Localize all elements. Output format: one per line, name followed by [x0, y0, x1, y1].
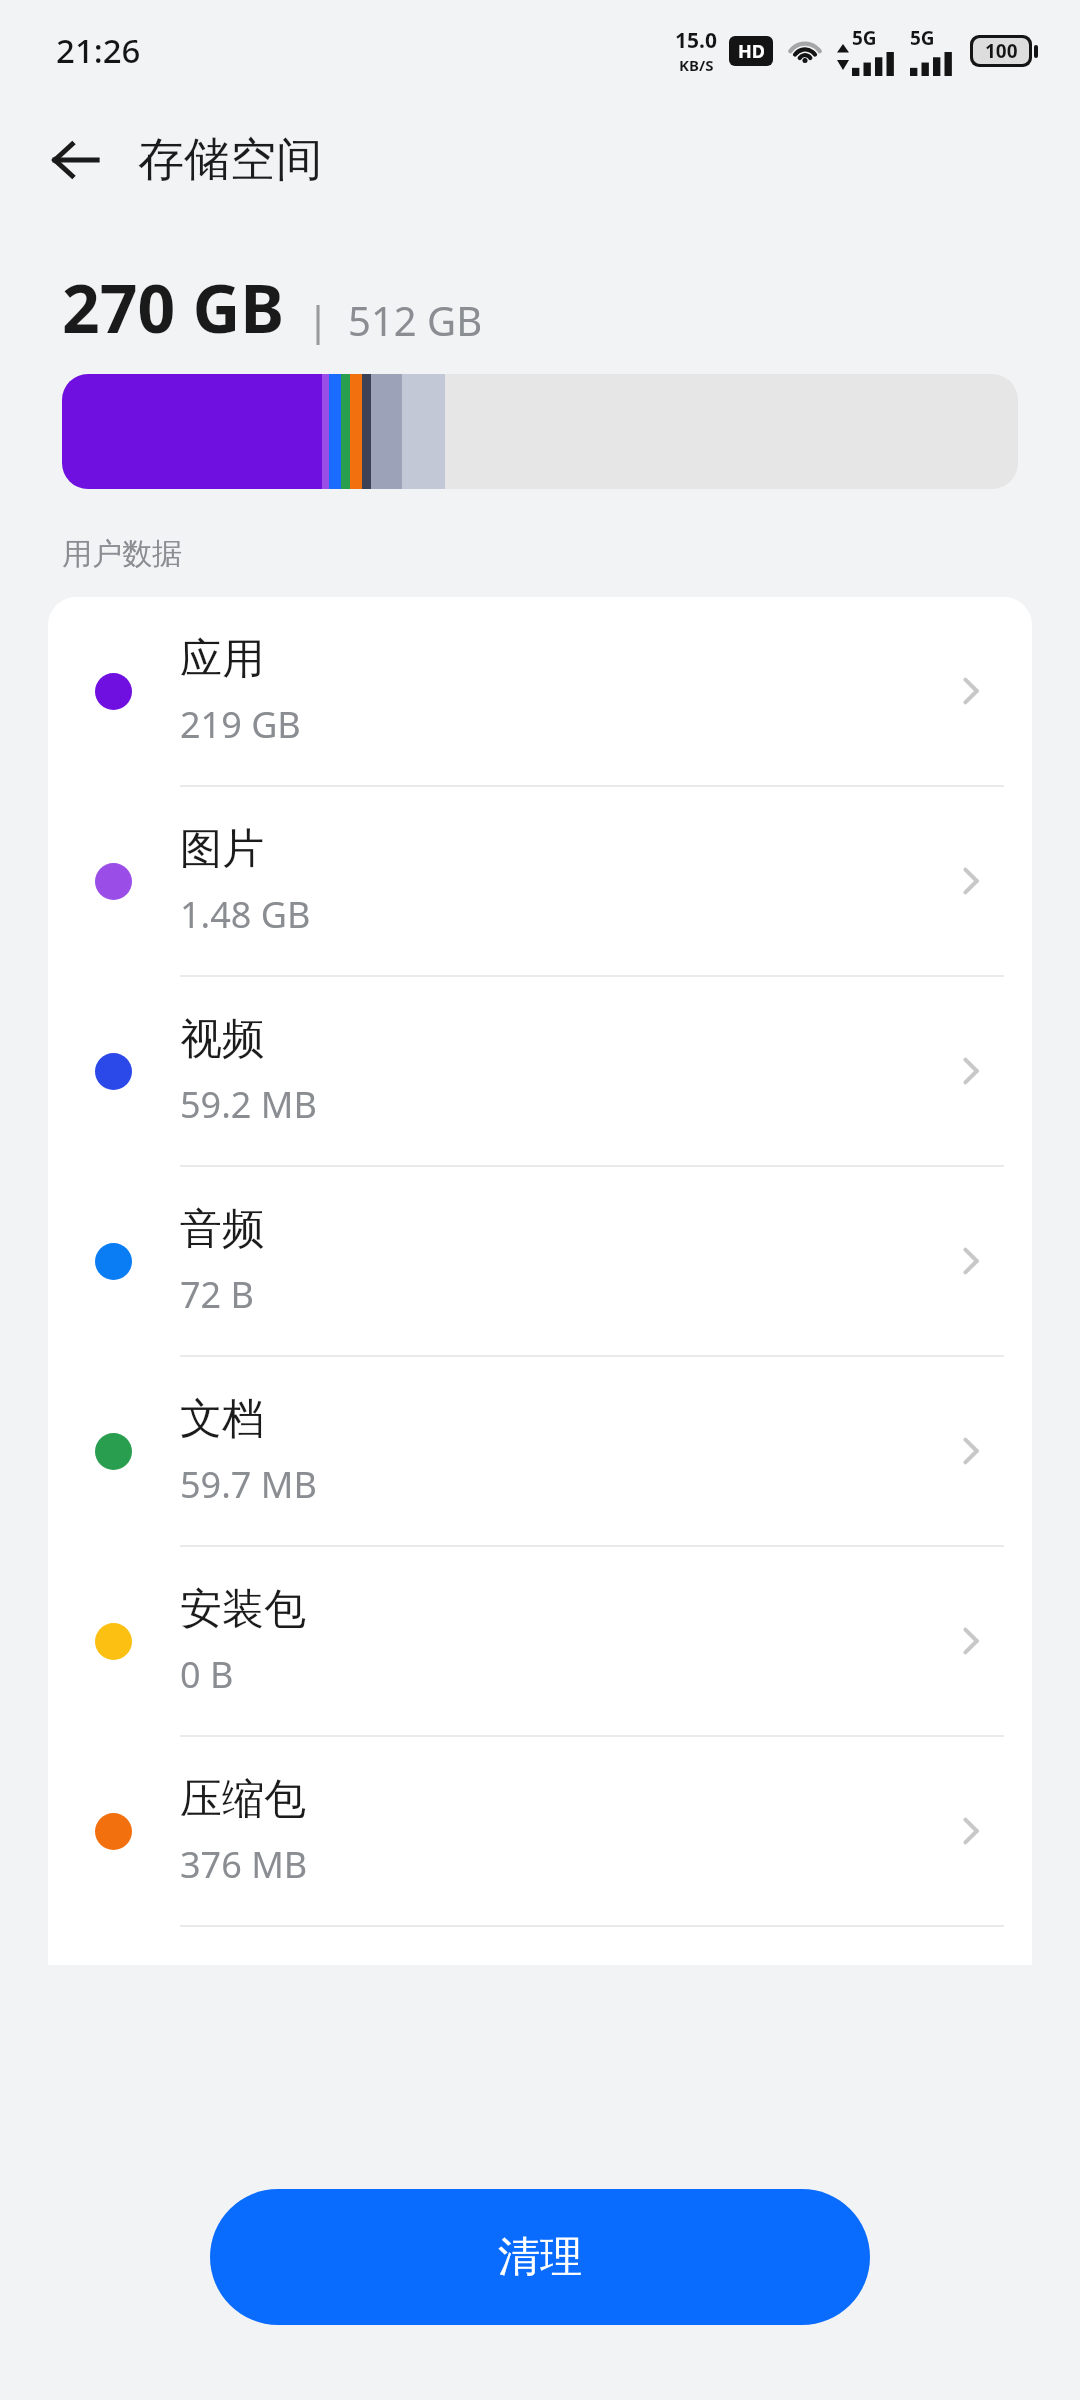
staticText: KB/S: [679, 55, 714, 75]
staticText: 512 GB: [348, 293, 483, 347]
staticText: 5G: [910, 25, 935, 51]
button[interactable]: 音频: [48, 1167, 1032, 1355]
staticText: 压缩包: [180, 1773, 306, 1826]
staticText: 应用: [180, 633, 264, 686]
staticText: 0 B: [180, 1650, 234, 1699]
staticText: HD: [738, 39, 765, 64]
staticText: 文档: [180, 1393, 264, 1446]
staticText: 270 GB: [62, 262, 285, 352]
staticText: 存储空间: [138, 131, 322, 189]
staticText: 音频: [180, 1203, 264, 1256]
button[interactable]: 应用: [48, 597, 1032, 785]
staticText: 72 B: [180, 1270, 254, 1319]
button[interactable]: Back: [34, 118, 118, 202]
staticText: 219 GB: [180, 700, 301, 749]
staticText: 1.48 GB: [180, 890, 311, 939]
button[interactable]: 清理: [210, 2189, 870, 2325]
staticText: 376 MB: [180, 1840, 308, 1889]
staticText: 15.0: [675, 26, 717, 55]
staticText: 59.2 MB: [180, 1080, 317, 1129]
staticText: 59.7 MB: [180, 1460, 317, 1509]
staticText: 5G: [852, 25, 877, 51]
button[interactable]: 图片: [48, 787, 1032, 975]
staticText: 视频: [180, 1013, 264, 1066]
button[interactable]: 压缩包: [48, 1737, 1032, 1925]
staticText: |: [307, 292, 330, 346]
button[interactable]: 文档: [48, 1357, 1032, 1545]
button[interactable]: 安装包: [48, 1547, 1032, 1735]
button[interactable]: 视频: [48, 977, 1032, 1165]
staticText: 图片: [180, 823, 264, 876]
staticText: 用户数据: [62, 535, 182, 573]
staticText: 清理: [498, 2231, 582, 2284]
staticText: 21:26: [56, 28, 141, 73]
staticText: 100: [985, 38, 1018, 64]
staticText: 安装包: [180, 1583, 306, 1636]
